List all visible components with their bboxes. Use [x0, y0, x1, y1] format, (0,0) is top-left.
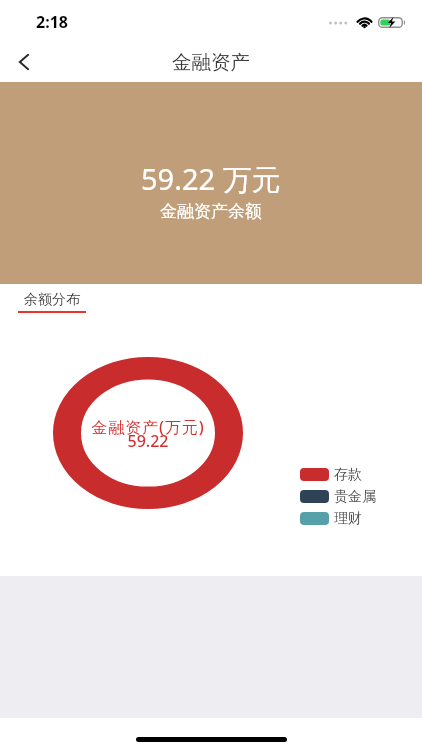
staticText: 59.22: [68, 430, 228, 452]
staticText: 余额分布: [24, 291, 80, 309]
staticText: 金融资产(万元): [68, 416, 228, 438]
staticText: 存款: [334, 466, 362, 484]
button[interactable]: Back: [7, 45, 41, 79]
staticText: 2:18: [36, 11, 68, 33]
button[interactable]: 存款: [300, 463, 362, 486]
button[interactable]: 贵金属: [300, 485, 376, 508]
staticText: 金融资产余额: [160, 201, 262, 222]
staticText: 理财: [334, 510, 362, 528]
button[interactable]: 余额分布: [18, 291, 86, 313]
staticText: 59.22 万元: [141, 159, 281, 199]
button[interactable]: 理财: [300, 507, 362, 530]
staticText: 金融资产: [172, 50, 250, 75]
staticText: 贵金属: [334, 488, 376, 506]
